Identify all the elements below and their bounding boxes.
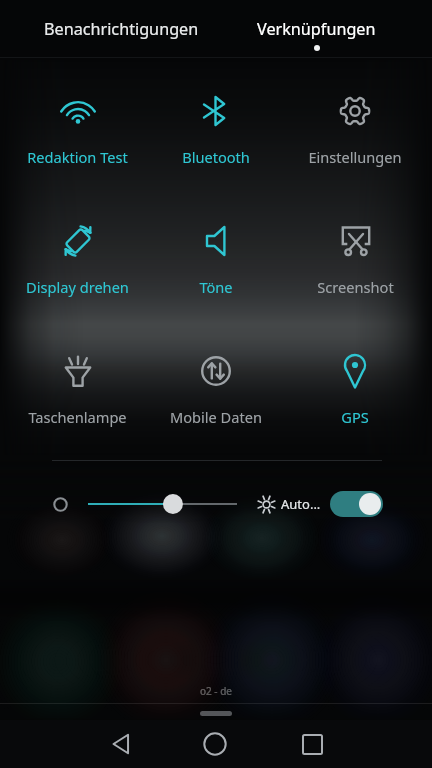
button[interactable]: Einstellungen [289,77,421,167]
button[interactable]: Display drehen [11,207,143,297]
button[interactable]: Screenshot [289,207,421,297]
staticText: Benachrichtigungen [44,18,199,40]
button[interactable]: Auto brightness [253,491,279,517]
staticText: Bluetooth [182,147,250,167]
staticText: Mobile Daten [170,407,262,427]
button[interactable]: Mobile Daten [150,337,282,427]
button[interactable]: Töne [150,207,282,297]
button[interactable]: Brightness slider [80,490,245,518]
staticText: Töne [199,277,233,297]
staticText: Display drehen [26,277,129,297]
button[interactable]: Auto brightness toggle [330,491,383,517]
button[interactable]: Benachrichtigungen [16,0,226,57]
staticText: o2 - de [200,684,232,698]
button[interactable]: Bluetooth [150,77,282,167]
button[interactable]: Home [191,720,239,768]
staticText: GPS [341,407,369,427]
staticText: Screenshot [317,277,394,297]
button[interactable]: GPS [289,337,421,427]
button[interactable]: Minimum brightness [46,490,74,518]
button[interactable]: Back [97,720,145,768]
staticText: Taschenlampe [28,407,127,427]
button[interactable]: Recent apps [288,720,336,768]
staticText: Redaktion Test [27,147,128,167]
staticText: Einstellungen [308,147,402,167]
button[interactable]: Redaktion Test [11,77,143,167]
staticText: Verknüpfungen [257,18,376,40]
button[interactable]: Taschenlampe [11,337,143,427]
staticText: Auto... [281,495,321,513]
button[interactable]: Verknüpfungen [211,0,421,57]
